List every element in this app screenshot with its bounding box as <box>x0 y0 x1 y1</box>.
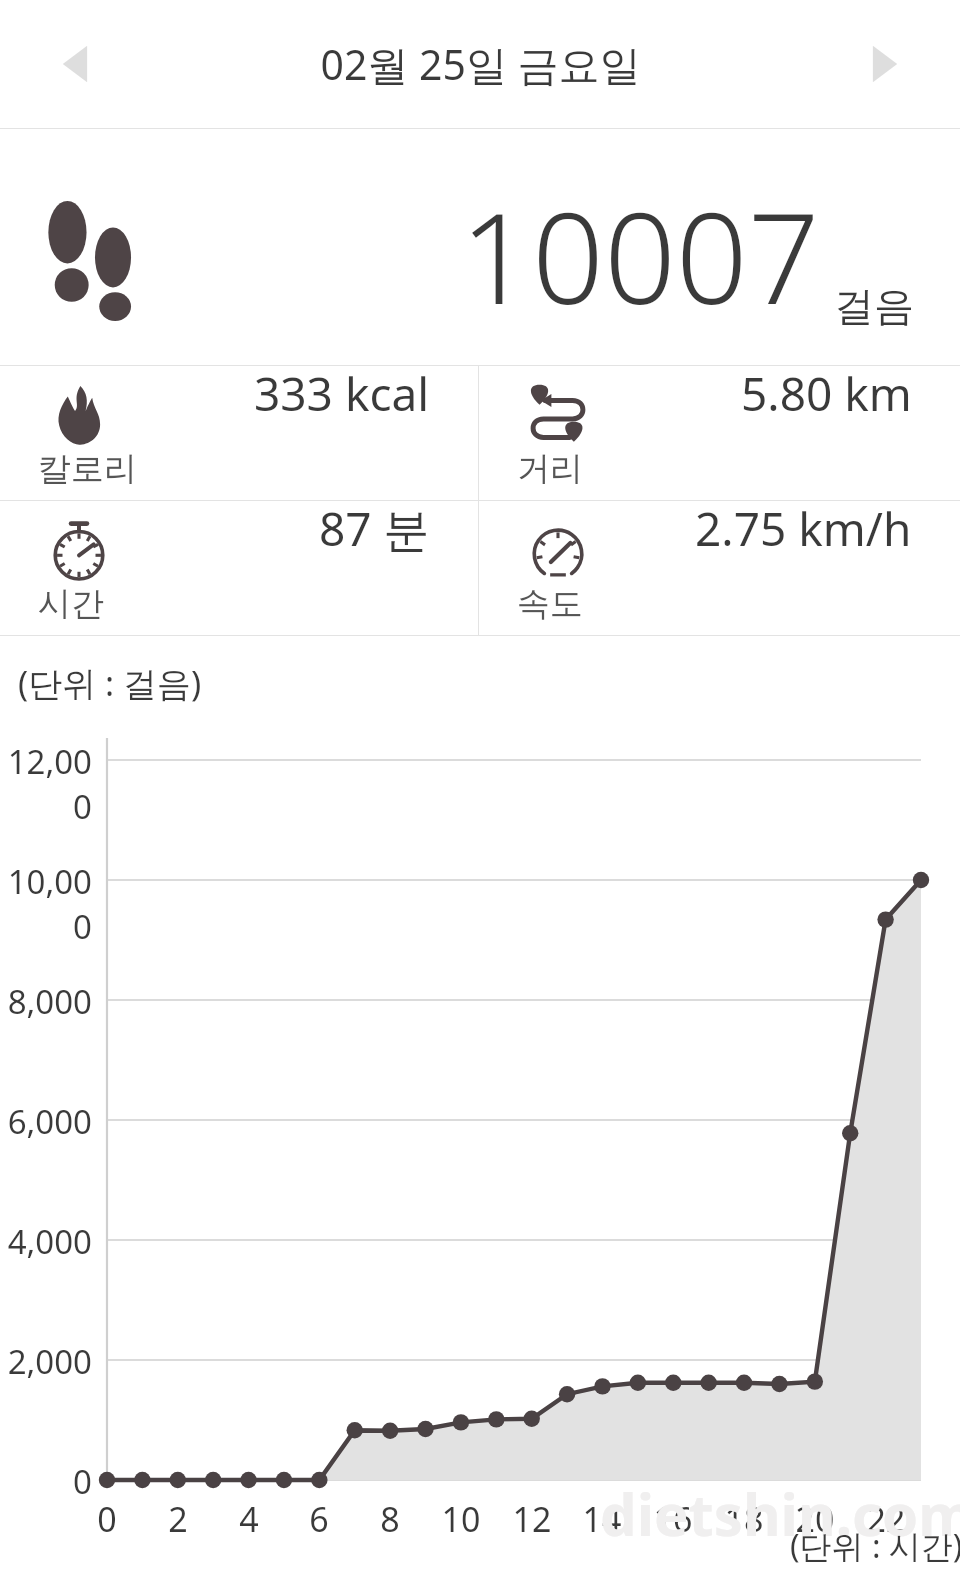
button[interactable]: 칼로리 <box>0 366 478 432</box>
staticText: 14 <box>572 1496 632 1542</box>
staticText: 시간 <box>38 583 104 625</box>
button[interactable]: Previous day <box>40 26 116 102</box>
staticText: dietshin.com <box>600 1474 960 1553</box>
staticText: 12 <box>502 1496 562 1542</box>
staticText: 18 <box>714 1496 774 1542</box>
staticText: 0 <box>77 1496 137 1542</box>
staticText: 333 kcal <box>254 362 430 425</box>
staticText: 02월 25일 금요일 <box>320 36 641 92</box>
staticText: 8,000 <box>0 979 92 1024</box>
staticText: 걸음 <box>834 281 914 331</box>
button[interactable]: 시간 <box>0 501 478 567</box>
button[interactable]: 속도 <box>479 501 960 567</box>
staticText: 22 <box>856 1496 916 1542</box>
staticText: 10,000 <box>0 859 92 949</box>
staticText: 2,000 <box>0 1339 92 1384</box>
staticText: 2 <box>148 1496 208 1542</box>
button[interactable]: 10007 <box>0 129 960 365</box>
staticText: 12,000 <box>0 739 92 829</box>
staticText: 87 분 <box>319 497 430 560</box>
staticText: 20 <box>785 1496 845 1542</box>
staticText: 2.75 km/h <box>695 497 912 560</box>
staticText: 16 <box>643 1496 703 1542</box>
staticText: 칼로리 <box>38 448 137 490</box>
button[interactable]: 거리 <box>479 366 960 432</box>
staticText: 5.80 km <box>741 362 912 425</box>
staticText: 4,000 <box>0 1219 92 1264</box>
staticText: 4 <box>219 1496 279 1542</box>
staticText: 속도 <box>517 583 583 625</box>
staticText: 거리 <box>517 448 583 490</box>
staticText: 8 <box>360 1496 420 1542</box>
staticText: 6,000 <box>0 1099 92 1144</box>
staticText: (단위 : 시간) <box>790 1524 960 1568</box>
staticText: 0 <box>0 1459 92 1504</box>
staticText: 10 <box>431 1496 491 1542</box>
staticText: (단위 : 걸음) <box>18 660 202 706</box>
staticText: 6 <box>289 1496 349 1542</box>
staticText: 10007 <box>460 169 820 341</box>
button[interactable]: Next day <box>844 26 920 102</box>
